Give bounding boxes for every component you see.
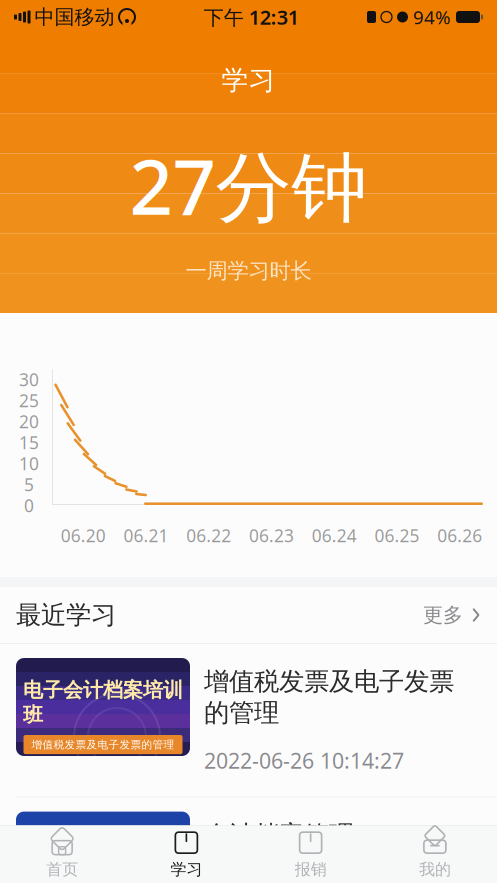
- button[interactable]: 首页: [0, 826, 124, 883]
- staticText: 06.21: [124, 524, 169, 547]
- staticText: 25: [19, 389, 39, 412]
- staticText: 06.25: [374, 524, 419, 547]
- button[interactable]: 学习: [124, 826, 248, 883]
- staticText: 更多: [423, 603, 463, 627]
- staticText: 5: [24, 473, 34, 496]
- staticText: 06.22: [186, 524, 231, 547]
- staticText: 2022-06-26 10:14:27: [204, 746, 404, 774]
- staticText: 中国移动: [34, 5, 114, 29]
- staticText: 06.26: [437, 524, 482, 547]
- button[interactable]: 最近学习: [0, 587, 497, 643]
- staticText: 06.20: [61, 524, 106, 547]
- staticText: 报销: [295, 860, 327, 879]
- staticText: 会计档案管理: [204, 820, 354, 851]
- staticText: 增值税发票及电子发票的管理: [31, 738, 174, 751]
- staticText: 20: [19, 410, 39, 433]
- staticText: 电子会计档案培训班: [23, 832, 183, 881]
- staticText: 我的: [419, 860, 451, 879]
- button[interactable]: 报销: [248, 826, 373, 883]
- staticText: 最近学习: [16, 599, 116, 631]
- staticText: 06.24: [312, 524, 357, 547]
- staticText: 电子会计档案培训班: [23, 678, 183, 727]
- staticText: 学习: [221, 64, 275, 97]
- button[interactable]: 电子会计档案培训班: [0, 644, 497, 797]
- staticText: 下午 12:31: [204, 4, 299, 30]
- staticText: 0: [24, 494, 34, 517]
- staticText: 27分钟: [129, 135, 367, 236]
- staticText: 94%: [413, 5, 451, 29]
- staticText: 增值税发票及电子发票的管理: [204, 666, 454, 728]
- staticText: 学习: [170, 860, 202, 879]
- button[interactable]: 电子会计档案培训班: [0, 798, 497, 883]
- staticText: 30: [19, 368, 39, 391]
- staticText: 15: [19, 431, 39, 454]
- staticText: 06.23: [249, 524, 294, 547]
- staticText: 首页: [46, 860, 78, 879]
- staticText: 10: [19, 452, 39, 475]
- staticText: 一周学习时长: [185, 258, 311, 284]
- button[interactable]: 我的: [373, 826, 497, 883]
